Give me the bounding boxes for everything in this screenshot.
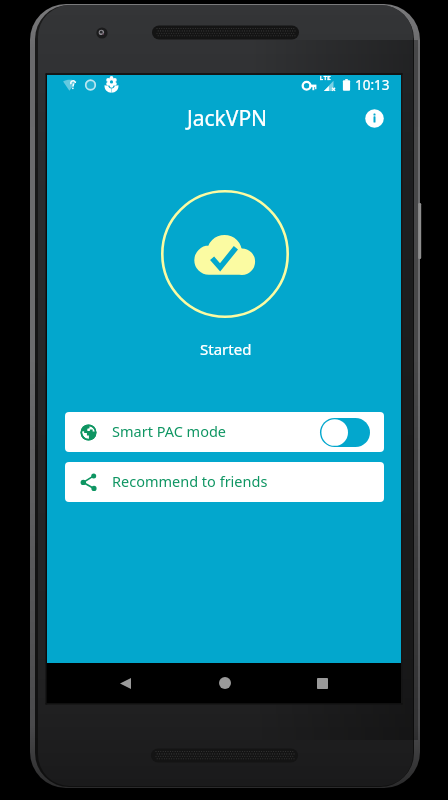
staticText: Recommend to friends bbox=[112, 471, 268, 491]
staticText: Started bbox=[200, 339, 252, 359]
staticText: 10:13 bbox=[355, 76, 390, 94]
button[interactable]: Recents bbox=[302, 663, 342, 703]
button[interactable]: Back bbox=[105, 663, 145, 703]
staticText: JackVPN bbox=[187, 104, 268, 133]
button[interactable]: Home bbox=[205, 663, 245, 703]
button[interactable]: Smart PAC mode bbox=[65, 412, 384, 452]
button[interactable]: Info bbox=[361, 105, 387, 131]
staticText: Smart PAC mode bbox=[112, 421, 227, 441]
button[interactable]: Recommend to friends bbox=[65, 462, 384, 502]
